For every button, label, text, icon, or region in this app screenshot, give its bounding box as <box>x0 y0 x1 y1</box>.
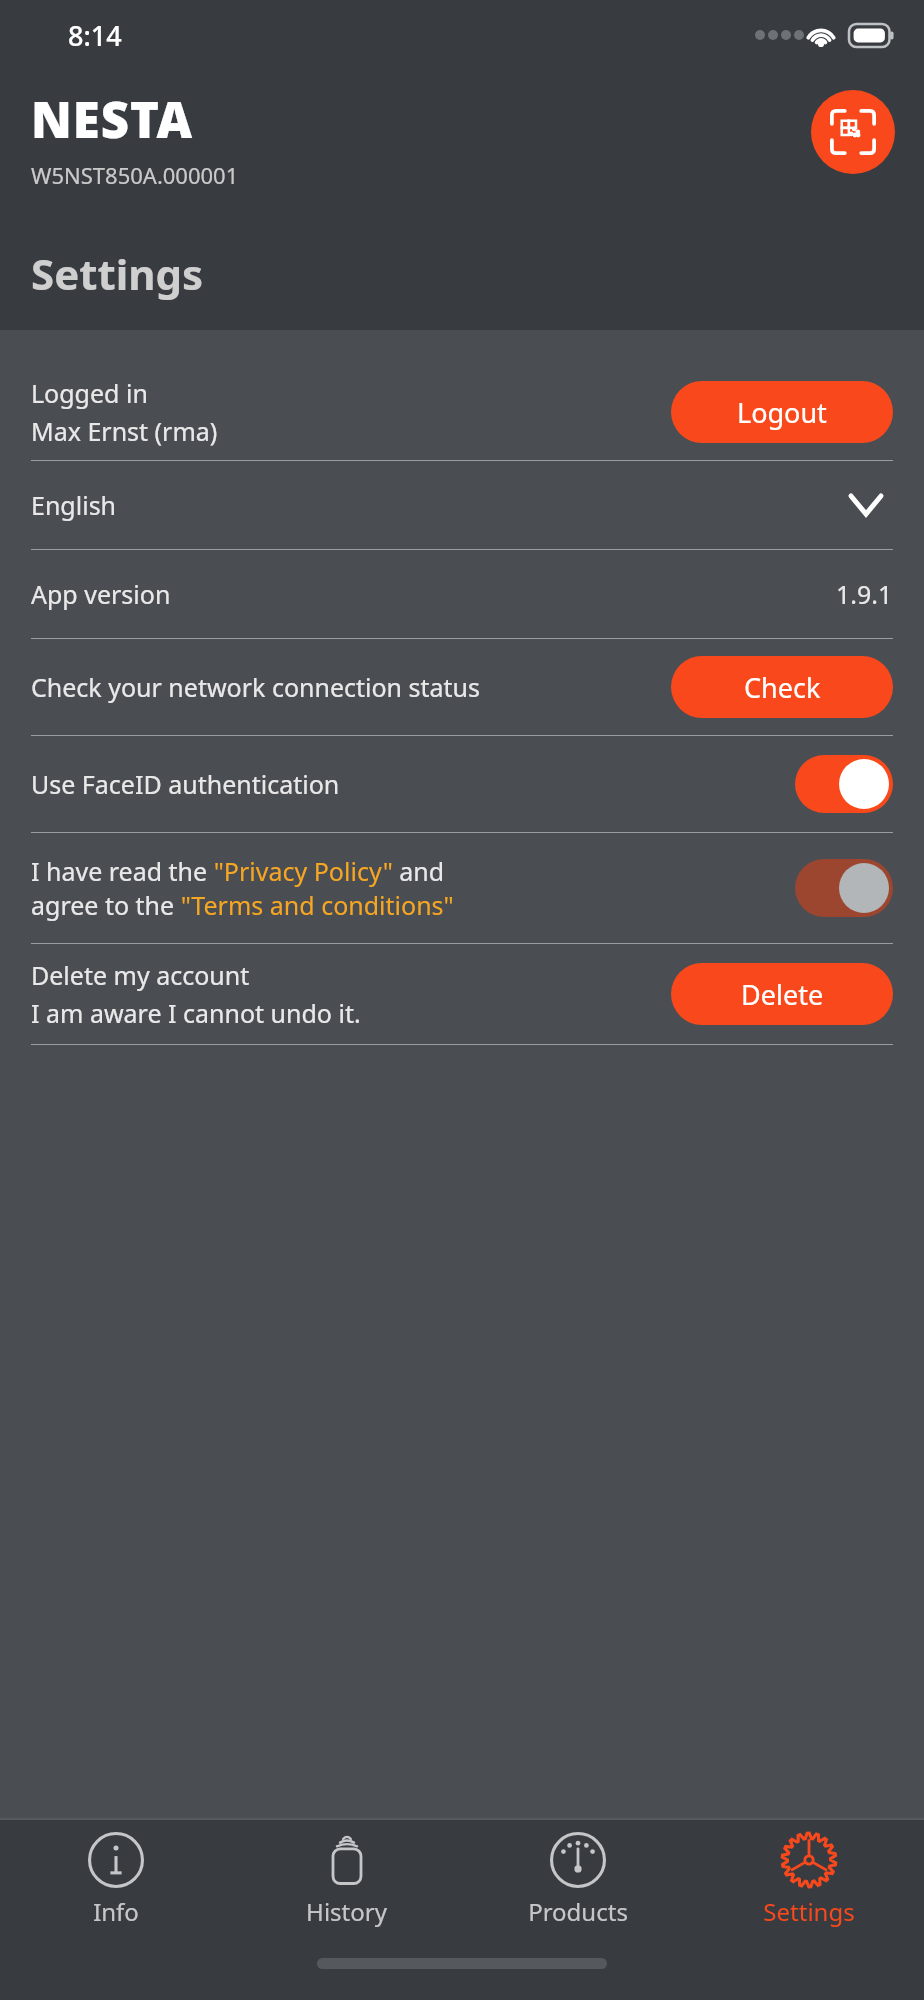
staticText: Delete my account <box>31 958 250 992</box>
staticText: History <box>306 1895 387 1928</box>
button[interactable]: Products <box>462 1820 693 1940</box>
staticText: Products <box>528 1895 628 1928</box>
staticText: English <box>31 488 839 522</box>
staticText: NESTA <box>31 86 194 153</box>
staticText: 1.9.1 <box>836 577 893 611</box>
staticText: App version <box>31 577 836 611</box>
button[interactable]: Settings <box>693 1820 924 1940</box>
staticText: Logout <box>737 394 827 431</box>
button[interactable]: Choose language <box>839 478 893 532</box>
button[interactable]: History <box>231 1820 462 1940</box>
staticText: I am aware I cannot undo it. <box>31 996 361 1030</box>
button[interactable]: Scan QR code <box>811 90 895 174</box>
staticText: Max Ernst (rma) <box>31 414 218 448</box>
staticText: 8:14 <box>68 17 122 54</box>
button[interactable]: Toggle on <box>795 755 893 813</box>
button[interactable]: Delete <box>671 963 893 1025</box>
staticText: Info <box>93 1895 139 1928</box>
staticText: Settings <box>763 1895 855 1928</box>
staticText: Settings <box>31 245 204 302</box>
button[interactable]: Toggle off <box>795 859 893 917</box>
button[interactable]: Logout <box>671 381 893 443</box>
staticText: Check your network connection status <box>31 670 671 704</box>
staticText: I have read the "Privacy Policy" and agr… <box>31 854 454 923</box>
button[interactable]: Info <box>0 1820 231 1940</box>
button[interactable]: Check <box>671 656 893 718</box>
staticText: Logged in <box>31 376 148 410</box>
staticText: Check <box>744 669 821 706</box>
staticText: Delete <box>741 976 824 1013</box>
staticText: Use FaceID authentication <box>31 767 795 801</box>
staticText: W5NST850A.000001 <box>31 160 239 190</box>
